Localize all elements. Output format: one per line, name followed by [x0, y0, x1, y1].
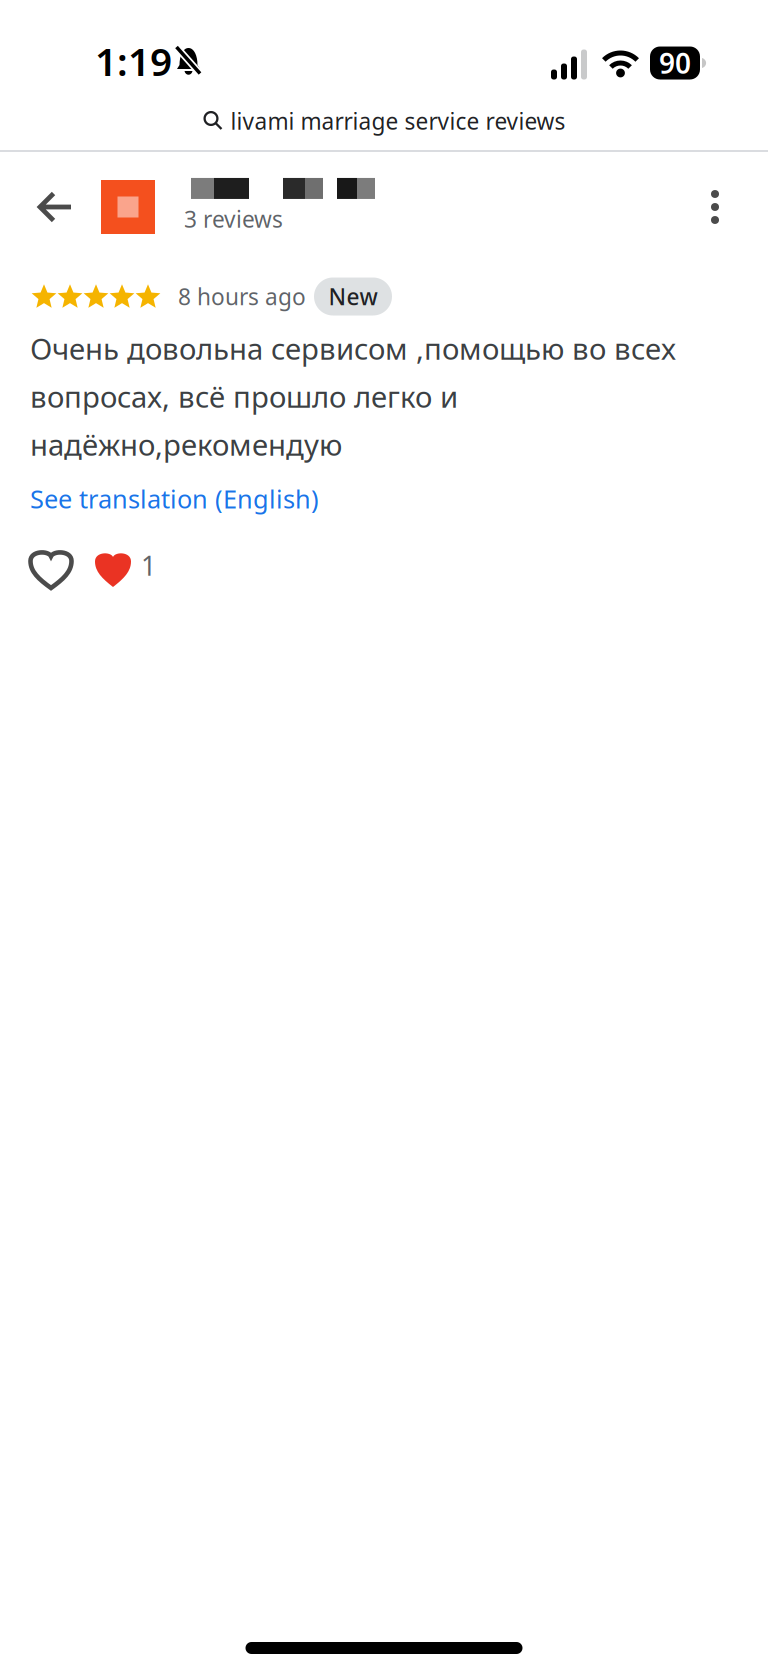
staticText: 90 [659, 44, 691, 82]
staticText: See translation (English) [30, 482, 319, 515]
button[interactable]: More options [684, 172, 746, 242]
staticText: 1:19 [95, 35, 172, 87]
staticText: 3 reviews [184, 204, 283, 234]
staticText: 1 [141, 548, 156, 583]
staticText: 8 hours ago [178, 281, 306, 311]
button[interactable]: Back [12, 165, 98, 249]
button[interactable]: See translation (English) [30, 464, 728, 515]
staticText: New [328, 281, 377, 311]
staticText: Очень довольна сервисом ,помощью во всех… [30, 329, 676, 464]
staticText: livami marriage service reviews [230, 106, 565, 136]
button[interactable]: Like [20, 537, 82, 601]
button[interactable]: 1 [95, 537, 160, 601]
button[interactable]: livami marriage service reviews [0, 100, 768, 142]
